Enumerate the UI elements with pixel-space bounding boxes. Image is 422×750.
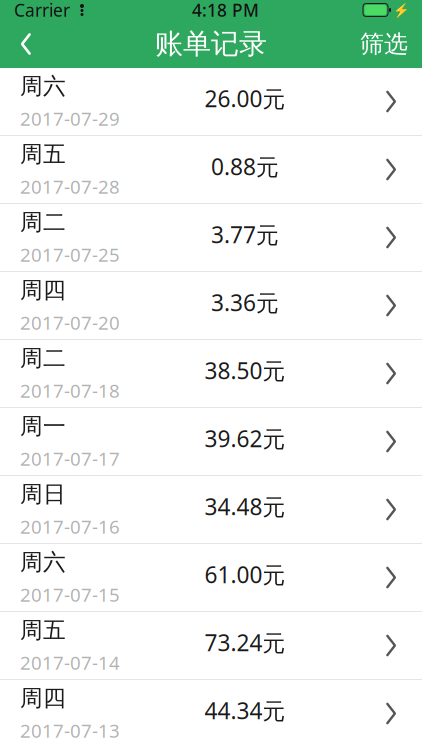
staticText: 周二 [20,344,66,372]
staticText: 4:18 PM [192,0,259,21]
staticText: 周五 [20,616,66,644]
staticText: 2017-07-14 [20,650,120,675]
button[interactable]: 周五 [0,612,422,679]
staticText: 34.48元 [204,491,285,521]
staticText: 周四 [20,276,66,304]
staticText: 2017-07-28 [20,174,120,199]
staticText: 73.24元 [204,627,285,657]
staticText: 38.50元 [204,355,285,385]
staticText: 筛选 [360,29,408,59]
staticText: 周四 [20,684,66,712]
staticText: 61.00元 [204,559,285,589]
button[interactable]: 周四 [0,680,422,747]
staticText: 3.36元 [211,287,279,317]
staticText: 3.77元 [211,219,279,249]
button[interactable]: 周二 [0,204,422,271]
button[interactable]: 周一 [0,408,422,475]
staticText: 账单记录 [155,27,267,61]
staticText: 2017-07-25 [20,242,120,267]
staticText: 周二 [20,208,66,236]
button[interactable]: 周四 [0,272,422,339]
staticText: 44.34元 [204,695,285,725]
staticText: 周六 [20,548,66,576]
button[interactable]: 周二 [0,340,422,407]
staticText: 2017-07-20 [20,310,120,335]
staticText: 39.62元 [204,423,285,453]
staticText: 周六 [20,72,66,100]
button[interactable]: 返回 [0,20,52,68]
button[interactable]: 周五 [0,136,422,203]
staticText: 周日 [20,480,66,508]
button[interactable]: 筛选 [346,20,422,68]
button[interactable]: 周六 [0,544,422,611]
staticText: 2017-07-17 [20,446,120,471]
staticText: 2017-07-18 [20,378,120,403]
staticText: 周五 [20,140,66,168]
staticText: 2017-07-15 [20,582,120,607]
staticText: 26.00元 [204,83,285,113]
staticText: 2017-07-29 [20,106,120,131]
staticText: 2017-07-16 [20,514,120,539]
staticText: ⚡ [393,2,410,18]
staticText: Carrier [14,0,70,21]
staticText: 周一 [20,412,66,440]
button[interactable]: 周日 [0,476,422,543]
staticText: 2017-07-13 [20,718,120,743]
button[interactable]: 周六 [0,68,422,135]
staticText: 0.88元 [211,151,279,181]
